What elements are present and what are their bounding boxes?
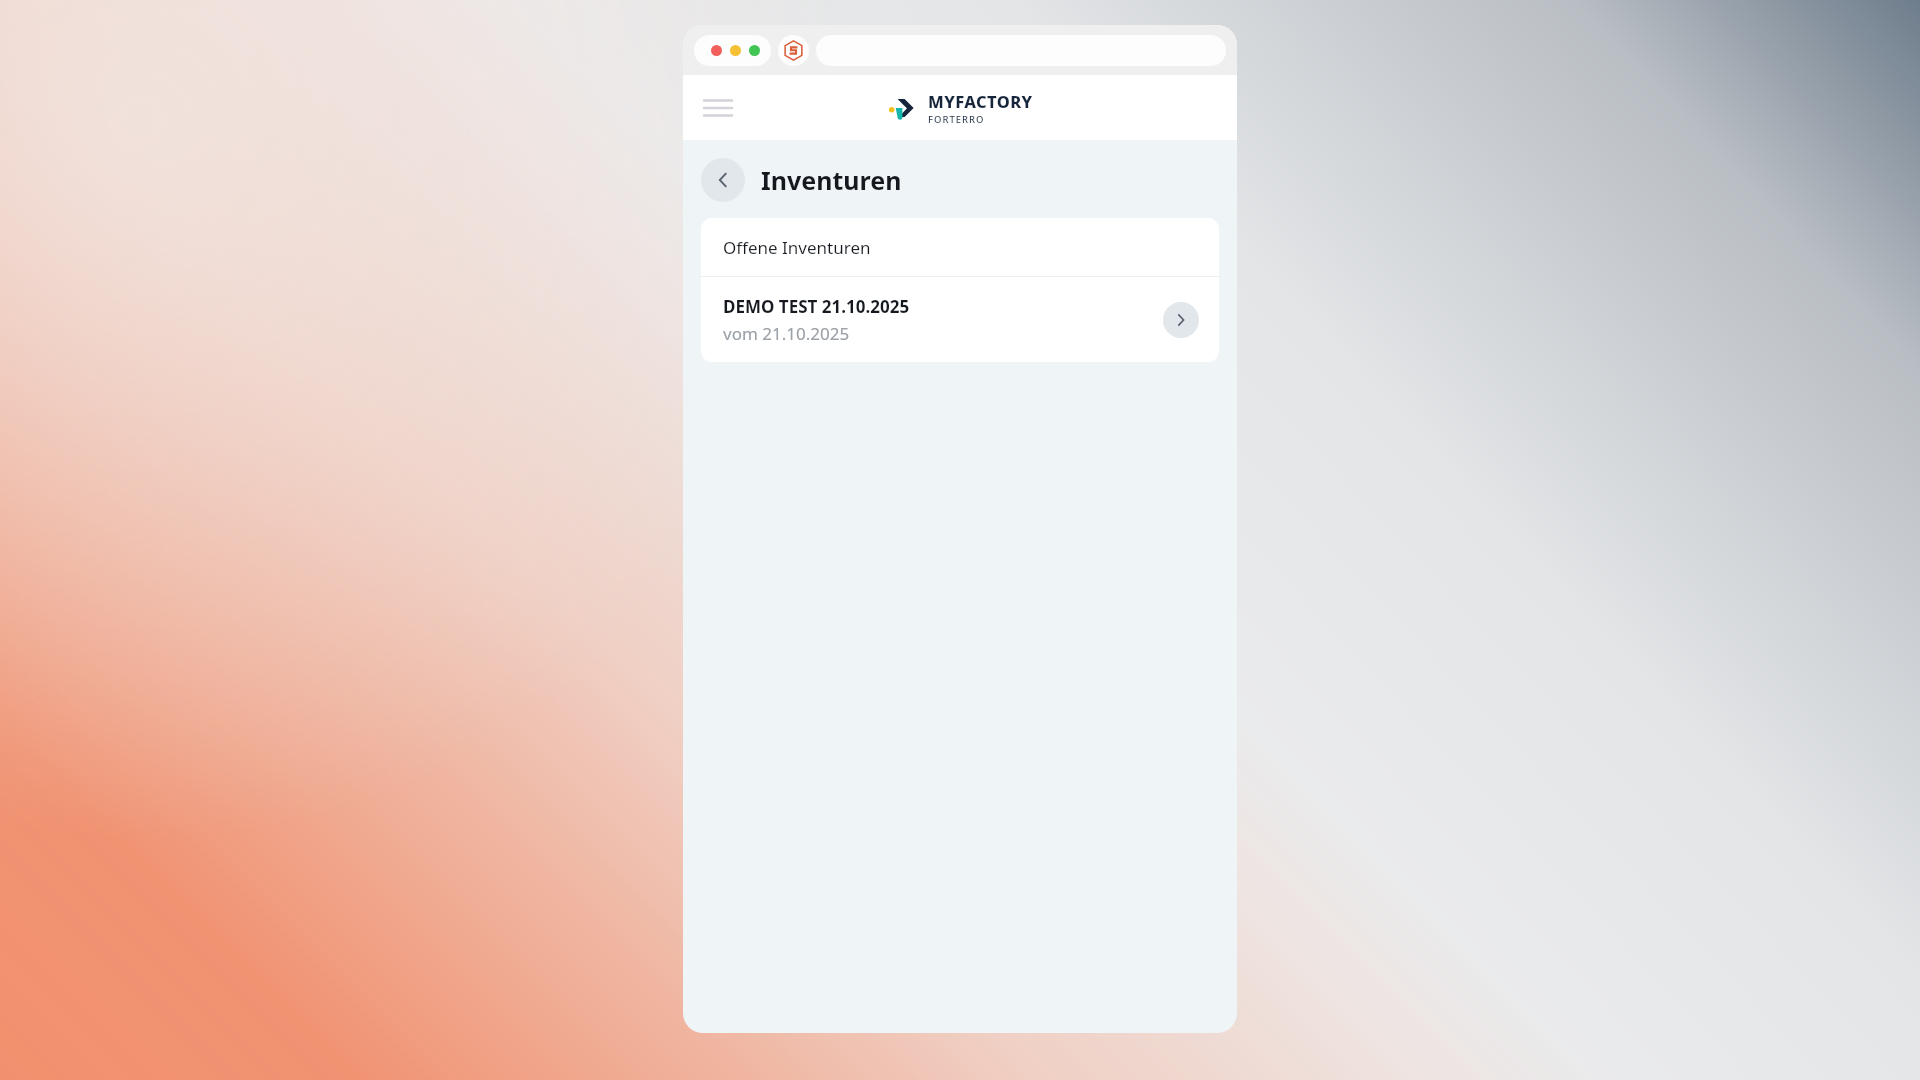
staticText: DEMO TEST 21.10.2025 (723, 295, 910, 318)
button[interactable]: Open inventory (1163, 302, 1199, 338)
button[interactable]: Site identity (778, 35, 809, 66)
staticText: Offene Inventuren (723, 236, 871, 259)
staticText: MYFACTORY (928, 90, 1033, 112)
button[interactable]: DEMO TEST 21.10.2025 (701, 277, 1219, 362)
staticText: FORTERRO (928, 113, 985, 126)
staticText: Inventuren (761, 163, 902, 197)
staticText: vom 21.10.2025 (723, 322, 850, 345)
button[interactable]: Back (701, 158, 745, 202)
button[interactable]: Menu (699, 89, 737, 127)
button[interactable]: Offene Inventuren (701, 218, 1219, 276)
